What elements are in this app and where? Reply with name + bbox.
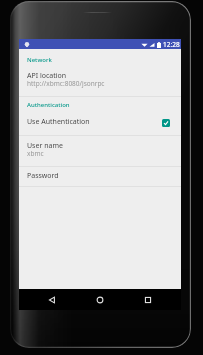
staticText: Network xyxy=(27,56,52,64)
staticText: Authentication xyxy=(27,101,70,109)
button[interactable]: API location xyxy=(19,64,181,96)
staticText: Use Authentication xyxy=(27,117,90,127)
staticText: http://xbmc:8080/jsonrpc xyxy=(27,79,105,88)
button[interactable]: Home xyxy=(85,289,115,310)
staticText: API location xyxy=(27,71,67,81)
staticText: xbmc xyxy=(27,149,44,158)
button[interactable]: Back xyxy=(37,289,67,310)
staticText: User name xyxy=(27,141,63,151)
button[interactable]: Recent apps xyxy=(133,289,163,310)
staticText: Password xyxy=(27,171,59,181)
staticText: 12:28 xyxy=(163,40,180,49)
button[interactable]: Use Authentication xyxy=(19,112,181,135)
button[interactable]: Password xyxy=(19,167,181,186)
button[interactable]: User name xyxy=(19,136,181,166)
